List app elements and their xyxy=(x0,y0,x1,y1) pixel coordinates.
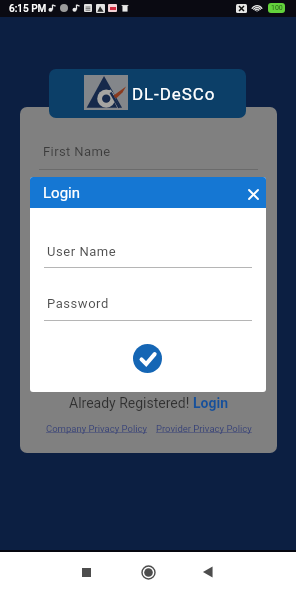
staticText: Login xyxy=(43,184,80,202)
button[interactable]: Recent apps xyxy=(69,555,103,589)
staticText: DL-DeSCo xyxy=(132,84,216,104)
staticText: First Name xyxy=(43,144,111,159)
button[interactable]: Home xyxy=(131,555,165,589)
button[interactable]: Provider Privacy Policy xyxy=(156,423,252,434)
button[interactable]: Close xyxy=(239,177,266,208)
button[interactable]: Login xyxy=(30,177,266,208)
staticText: User Name xyxy=(47,244,117,259)
button[interactable]: Login xyxy=(193,395,229,411)
button[interactable]: Back xyxy=(191,555,225,589)
staticText: 100 xyxy=(271,4,283,12)
button[interactable]: Submit xyxy=(133,344,162,373)
staticText: Already Registered! xyxy=(69,395,193,411)
staticText: 6:15 PM xyxy=(9,3,47,15)
staticText: Password xyxy=(47,296,109,311)
button[interactable]: Company Privacy Policy xyxy=(46,423,148,434)
